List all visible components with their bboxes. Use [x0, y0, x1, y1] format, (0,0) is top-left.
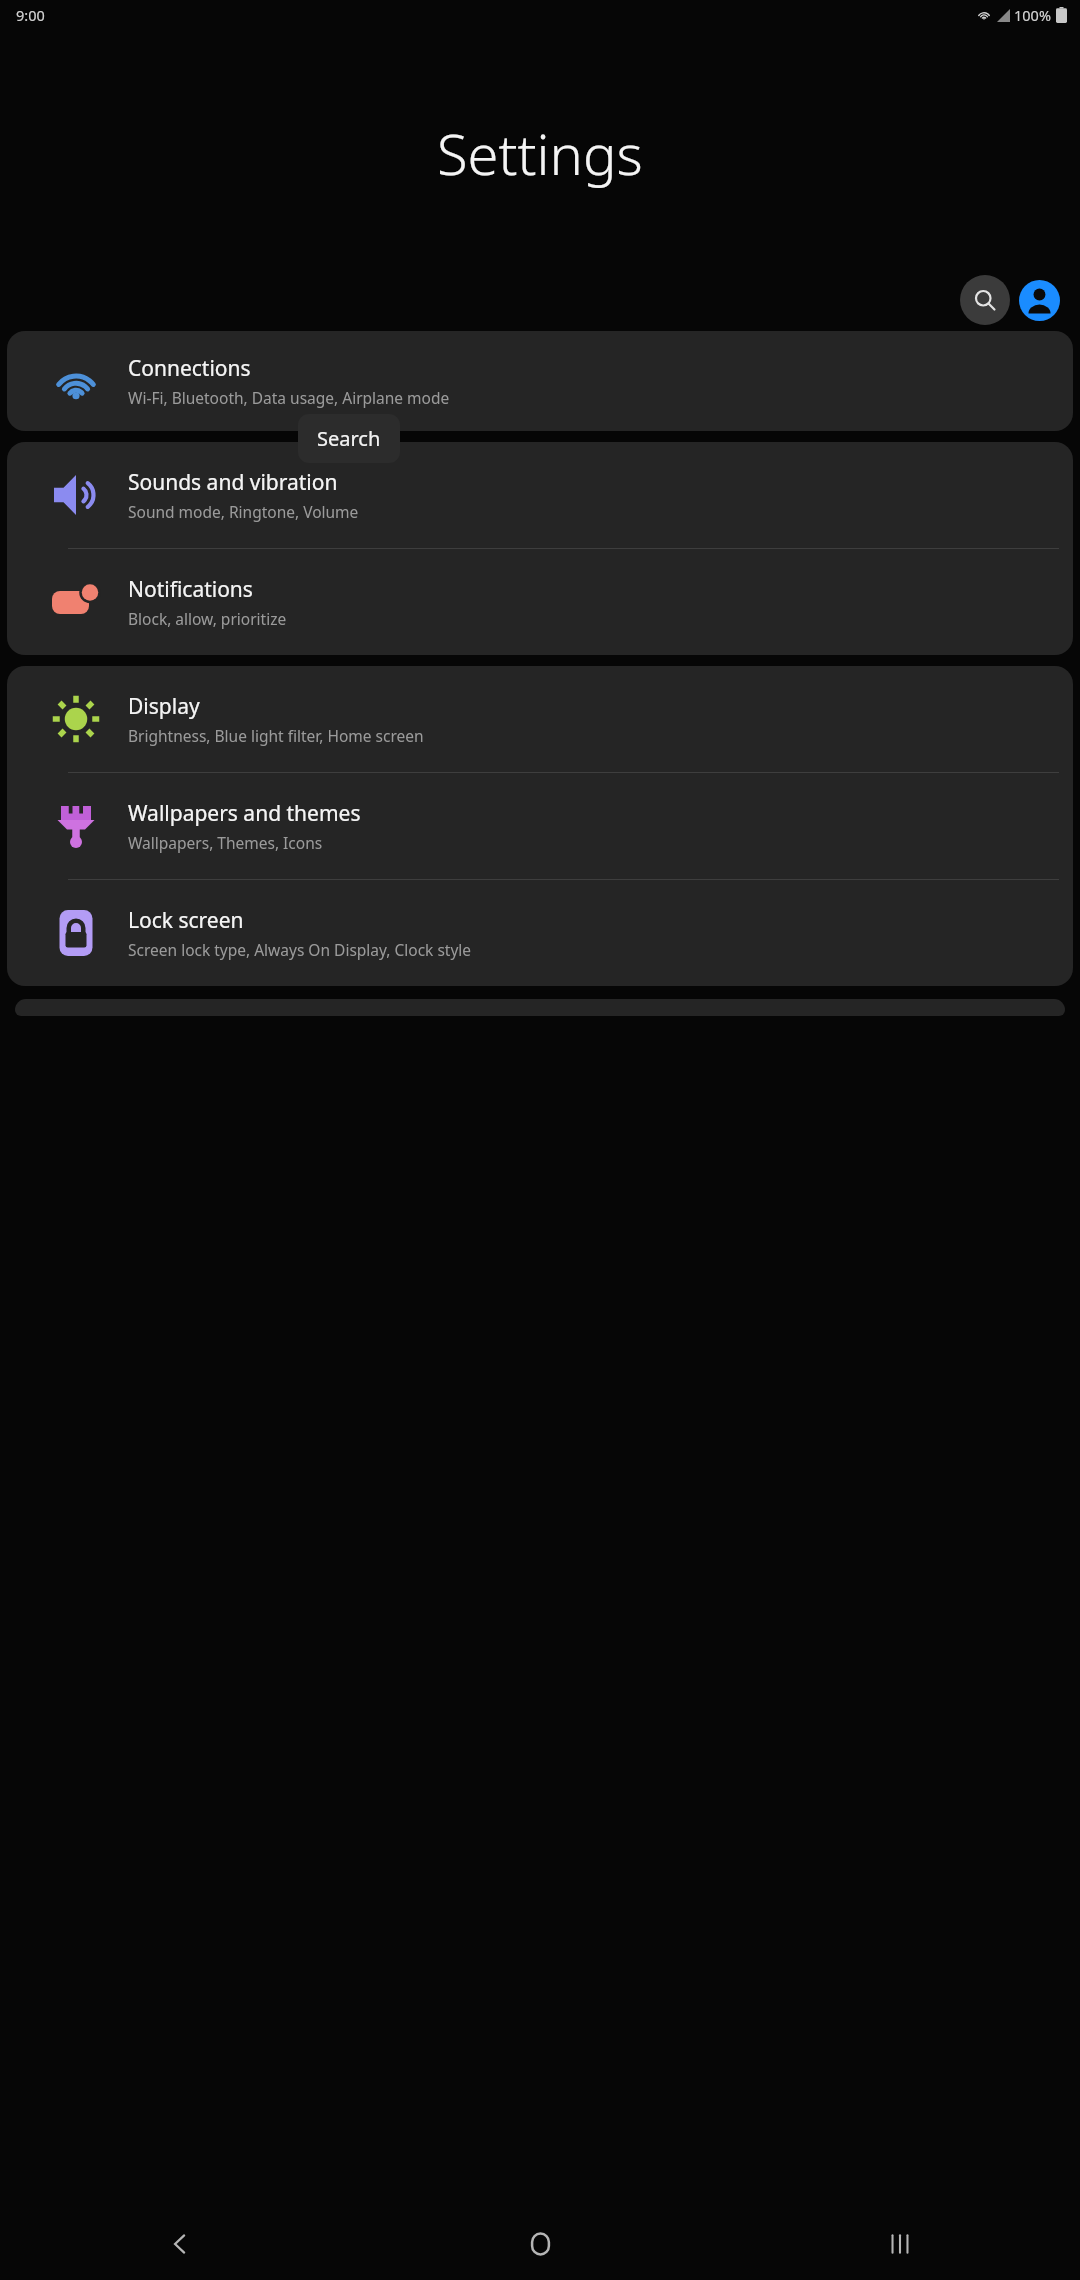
button[interactable]: Wallpapers and themes	[7, 773, 1073, 879]
staticText: Wallpapers and themes	[128, 799, 361, 828]
staticText: Screen lock type, Always On Display, Clo…	[128, 939, 472, 960]
button[interactable]: Display	[7, 666, 1073, 772]
staticText: Display	[128, 692, 200, 721]
staticText: Search	[317, 425, 381, 452]
button[interactable]: Back	[0, 2208, 360, 2280]
staticText: Block, allow, prioritize	[128, 608, 287, 629]
staticText: 9:00	[16, 5, 45, 25]
button[interactable]: Home	[360, 2208, 720, 2280]
staticText: Lock screen	[128, 906, 244, 935]
staticText: Brightness, Blue light filter, Home scre…	[128, 725, 424, 746]
button[interactable]: Connections	[7, 331, 1073, 431]
button[interactable]: Notifications	[7, 549, 1073, 655]
button[interactable]: Samsung account	[1019, 280, 1060, 321]
button[interactable]: Search	[960, 275, 1010, 325]
staticText: Wallpapers, Themes, Icons	[128, 832, 323, 853]
button[interactable]: Lock screen	[7, 880, 1073, 986]
staticText: Sounds and vibration	[128, 468, 338, 497]
staticText: Sound mode, Ringtone, Volume	[128, 501, 359, 522]
staticText: Settings	[437, 115, 643, 191]
staticText: Connections	[128, 354, 251, 383]
staticText: Notifications	[128, 575, 253, 604]
staticText: Wi-Fi, Bluetooth, Data usage, Airplane m…	[128, 387, 450, 408]
staticText: 100%	[1014, 5, 1051, 25]
button[interactable]: Recents	[720, 2208, 1080, 2280]
button[interactable]: Sounds and vibration	[7, 442, 1073, 548]
